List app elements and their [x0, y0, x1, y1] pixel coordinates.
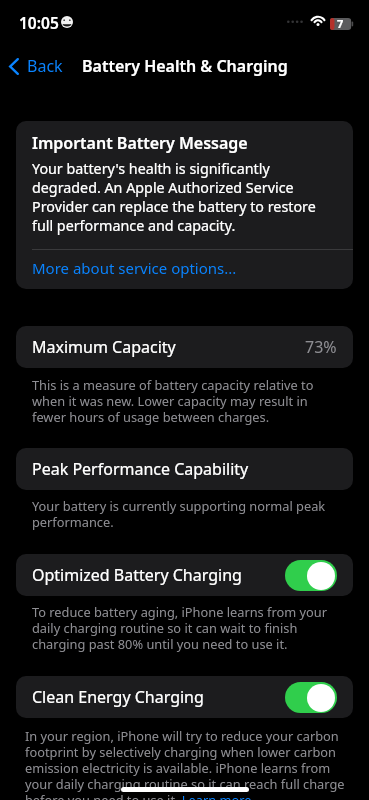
button[interactable]: Toggle Optimized Battery Charging [285, 560, 337, 591]
staticText: Maximum Capacity [32, 336, 176, 358]
staticText: To reduce battery aging, iPhone learns f… [32, 603, 337, 652]
button[interactable]: Maximum Capacity [16, 326, 353, 368]
staticText: Peak Performance Capability [32, 458, 249, 480]
button[interactable]: Toggle Clean Energy Charging [285, 682, 337, 713]
staticText: Back [27, 55, 63, 77]
button[interactable]: More about service options... [16, 250, 353, 289]
staticText: 73% [305, 336, 337, 358]
staticText: Optimized Battery Charging [32, 564, 242, 586]
button[interactable]: Back [0, 49, 73, 83]
staticText: Your battery's health is significantly d… [32, 159, 337, 235]
staticText: Important Battery Message [32, 132, 248, 154]
staticText: Clean Energy Charging [32, 686, 204, 708]
staticText: 10:05 [19, 12, 59, 33]
staticText: This is a measure of battery capacity re… [32, 376, 337, 425]
button[interactable]: Peak Performance Capability [16, 448, 353, 490]
staticText: More about service options... [32, 258, 237, 278]
staticText: In your region, iPhone will try to reduc… [25, 727, 349, 800]
staticText: Your battery is currently supporting nor… [32, 497, 337, 530]
staticText: Battery Health & Charging [82, 55, 288, 77]
staticText: 7 [337, 16, 344, 31]
